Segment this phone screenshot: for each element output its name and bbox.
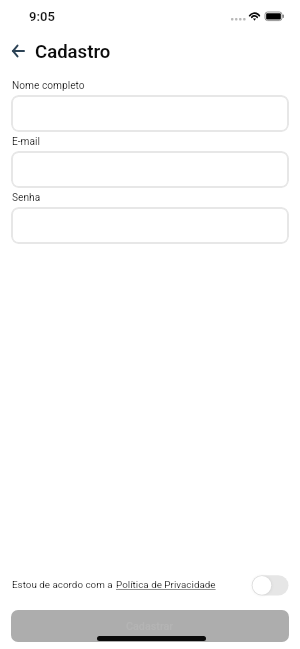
- staticText: E-mail: [12, 136, 41, 148]
- staticText: 9:05: [29, 9, 55, 24]
- staticText: Senha: [12, 192, 41, 204]
- button[interactable]: Cadastrar: [11, 610, 289, 642]
- button[interactable]: Accept privacy policy: [249, 572, 291, 599]
- staticText: Estou de acordo com a: [12, 579, 116, 591]
- staticText: Cadastro: [35, 41, 111, 63]
- button[interactable]: Back: [2, 33, 34, 65]
- button[interactable]: [11, 151, 289, 188]
- staticText: Nome completo: [12, 80, 85, 92]
- button[interactable]: [11, 207, 289, 244]
- button[interactable]: [11, 95, 289, 132]
- button[interactable]: Política de Privacidade: [116, 579, 216, 591]
